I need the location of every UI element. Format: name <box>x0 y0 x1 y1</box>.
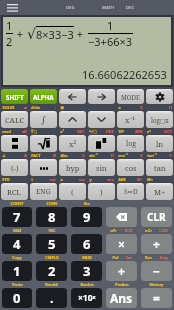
staticText: Copy <box>12 255 22 260</box>
button[interactable]: tan <box>146 159 173 176</box>
button[interactable]: sin <box>88 159 115 176</box>
button[interactable]: 5 <box>36 234 67 254</box>
button[interactable]: ∫ <box>30 111 57 128</box>
staticText: 16.66062262653 <box>82 67 167 82</box>
button[interactable]: Menu <box>0 0 24 15</box>
staticText: Ans <box>110 290 133 306</box>
staticText: SOLVE <box>2 105 15 110</box>
button[interactable]: . <box>36 288 67 308</box>
staticText: d/dx <box>31 105 40 110</box>
staticText: 2 <box>6 34 13 49</box>
staticText: OCT <box>164 129 172 134</box>
button[interactable]: ALPHA <box>30 89 57 104</box>
button[interactable]: M+ <box>146 183 173 200</box>
staticText: S⇔D <box>124 187 138 196</box>
other: Backspace <box>106 207 137 227</box>
staticText: csc <box>79 177 85 182</box>
button[interactable]: ENG <box>30 183 57 200</box>
staticText: MAT <box>13 228 22 233</box>
staticText: F <box>169 153 172 158</box>
staticText: PreAns <box>115 282 129 287</box>
button[interactable]: hyp <box>59 159 86 176</box>
staticText: cot <box>49 177 56 182</box>
button[interactable]: + <box>106 261 137 281</box>
button[interactable]: SHIFT <box>1 89 28 104</box>
button[interactable]: 8 <box>36 207 67 227</box>
staticText: BASE <box>82 255 92 260</box>
button[interactable]: ÷ <box>141 234 172 254</box>
button[interactable]: S⇔D <box>117 183 144 200</box>
button[interactable]: 3 <box>71 261 102 281</box>
button[interactable]: 1 <box>2 261 32 281</box>
button[interactable]: Backspace <box>106 207 137 227</box>
button[interactable]: POW <box>88 135 115 152</box>
staticText: 8 <box>48 208 56 226</box>
staticText: x <box>118 105 121 110</box>
staticText: 6 <box>83 235 91 253</box>
button[interactable]: Right <box>88 89 115 104</box>
button[interactable]: ln <box>146 135 173 152</box>
staticText: 0 <box>13 289 21 307</box>
staticText: M− <box>137 177 143 182</box>
staticText: DEC <box>77 129 85 134</box>
button[interactable]: Left <box>59 89 86 104</box>
staticText: 1 <box>6 18 13 33</box>
button[interactable]: 2 <box>36 261 67 281</box>
button[interactable]: (-) <box>1 159 28 176</box>
staticText: Paste <box>12 282 23 287</box>
button[interactable]: FRAC <box>1 135 28 152</box>
staticText: 4 <box>13 235 21 253</box>
button[interactable]: RCL <box>1 183 28 200</box>
staticText: DEC <box>126 5 135 11</box>
staticText: ) <box>100 187 103 197</box>
button[interactable]: MODE <box>117 89 144 104</box>
staticText: RanInt <box>80 282 94 287</box>
button[interactable]: UP <box>59 111 86 128</box>
staticText: 5 <box>48 235 56 253</box>
staticText: x <box>60 177 63 182</box>
staticText: MODE <box>121 93 140 101</box>
button[interactable]: cos <box>117 159 144 176</box>
staticText: ▪ <box>24 105 27 110</box>
staticText: FACT <box>31 153 41 158</box>
staticText: HEX <box>106 129 114 134</box>
staticText: ×10ˣ <box>78 292 96 304</box>
button[interactable]: ×10ˣ <box>71 288 102 308</box>
staticText: 1 <box>13 262 21 280</box>
button[interactable]: ENG <box>30 159 57 176</box>
button[interactable]: SQRT <box>30 135 57 152</box>
staticText: ∠ <box>2 153 6 158</box>
button[interactable]: x² <box>59 135 86 152</box>
button[interactable]: Ans <box>106 288 137 308</box>
staticText: Rand# <box>45 282 58 287</box>
button[interactable]: log <box>117 135 144 152</box>
button[interactable]: ) <box>88 183 115 200</box>
button[interactable]: CALC <box>1 111 28 128</box>
staticText: 7 <box>13 208 21 226</box>
button[interactable]: 9 <box>71 207 102 227</box>
staticText: sec <box>107 177 114 182</box>
button[interactable]: ( <box>59 183 86 200</box>
staticText: x³ <box>60 129 64 134</box>
button[interactable]: x⁻¹ <box>117 111 144 128</box>
staticText: DEG <box>66 5 75 11</box>
button[interactable]: 6 <box>71 234 102 254</box>
staticText: ˣ√◻ <box>89 129 97 134</box>
staticText: C <box>82 153 85 158</box>
button[interactable]: × <box>106 234 137 254</box>
button[interactable]: CLR <box>141 207 172 227</box>
button[interactable]: − <box>141 261 172 281</box>
staticText: B <box>53 153 56 158</box>
staticText: + <box>74 26 87 41</box>
button[interactable]: 0 <box>2 288 32 308</box>
button[interactable]: log◻x <box>146 111 173 128</box>
button[interactable]: Settings <box>146 89 173 104</box>
button[interactable]: 7 <box>2 207 32 227</box>
staticText: MATH <box>102 5 115 11</box>
button[interactable]: DN <box>88 111 115 128</box>
button[interactable]: 4 <box>2 234 32 254</box>
staticText: CLR <box>147 210 166 224</box>
button[interactable]: = <box>141 288 172 308</box>
staticText: ABS <box>118 177 126 182</box>
staticText: Rec <box>145 255 152 260</box>
